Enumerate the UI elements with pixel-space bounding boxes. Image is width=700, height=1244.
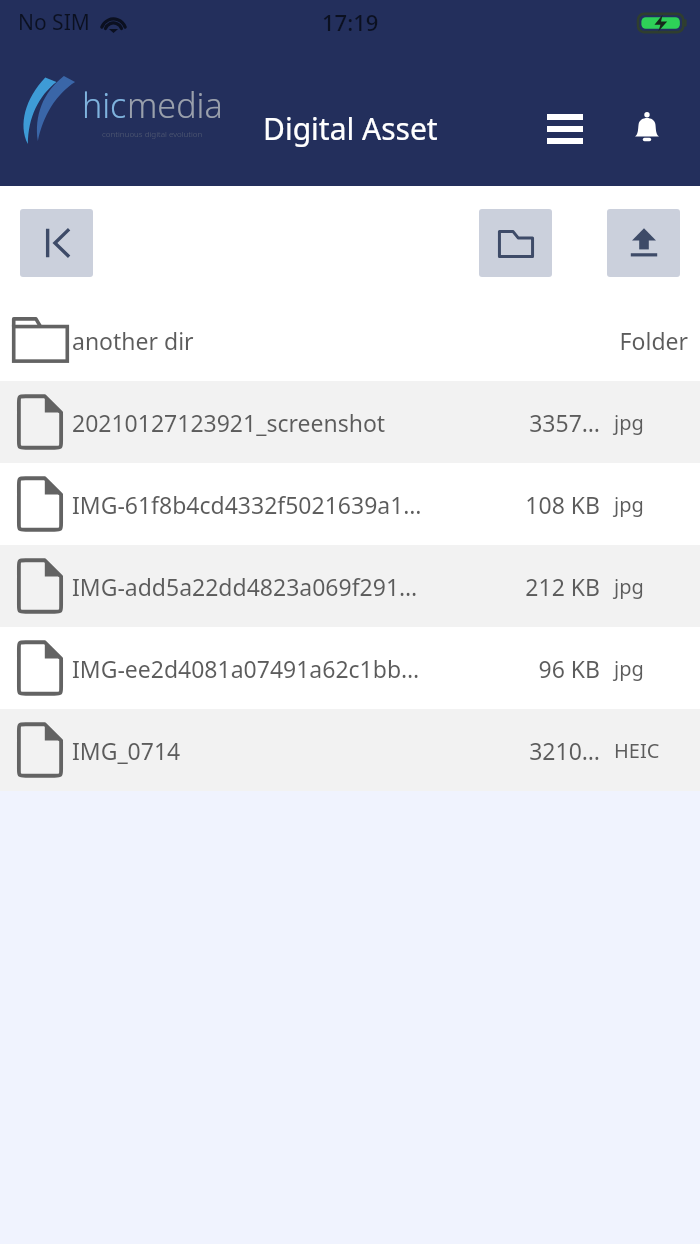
button[interactable]: Menu: [534, 98, 596, 160]
staticText: 108 KB: [490, 489, 600, 520]
staticText: IMG-add5a22dd4823a069f291…: [72, 571, 482, 602]
staticText: No SIM: [18, 8, 90, 37]
staticText: 3357…: [490, 407, 600, 438]
staticText: Folder: [570, 325, 688, 356]
staticText: jpg: [614, 491, 700, 518]
staticText: IMG_0714: [72, 735, 482, 766]
button[interactable]: another dir: [0, 299, 700, 381]
button[interactable]: Notifications: [616, 98, 678, 160]
staticText: 17:19: [322, 7, 379, 37]
staticText: another dir: [72, 325, 562, 356]
staticText: 96 KB: [490, 653, 600, 684]
button[interactable]: Upload: [607, 209, 680, 277]
staticText: Digital Asset: [263, 108, 438, 149]
button[interactable]: 20210127123921_screenshot: [0, 381, 700, 463]
staticText: jpg: [614, 655, 700, 682]
staticText: hic: [82, 82, 127, 128]
staticText: continuous digital evolution: [102, 128, 203, 139]
staticText: jpg: [614, 573, 700, 600]
staticText: jpg: [614, 409, 700, 436]
staticText: IMG-61f8b4cd4332f5021639a1…: [72, 489, 482, 520]
button[interactable]: IMG-ee2d4081a07491a62c1bb…: [0, 627, 700, 709]
button[interactable]: IMG-add5a22dd4823a069f291…: [0, 545, 700, 627]
staticText: 20210127123921_screenshot: [72, 407, 482, 438]
button[interactable]: IMG_0714: [0, 709, 700, 791]
staticText: 3210…: [490, 735, 600, 766]
staticText: IMG-ee2d4081a07491a62c1bb…: [72, 653, 482, 684]
button[interactable]: IMG-61f8b4cd4332f5021639a1…: [0, 463, 700, 545]
button[interactable]: Back to root: [20, 209, 93, 277]
staticText: 212 KB: [490, 571, 600, 602]
button[interactable]: New folder: [479, 209, 552, 277]
staticText: media: [127, 82, 223, 128]
staticText: HEIC: [614, 737, 700, 764]
